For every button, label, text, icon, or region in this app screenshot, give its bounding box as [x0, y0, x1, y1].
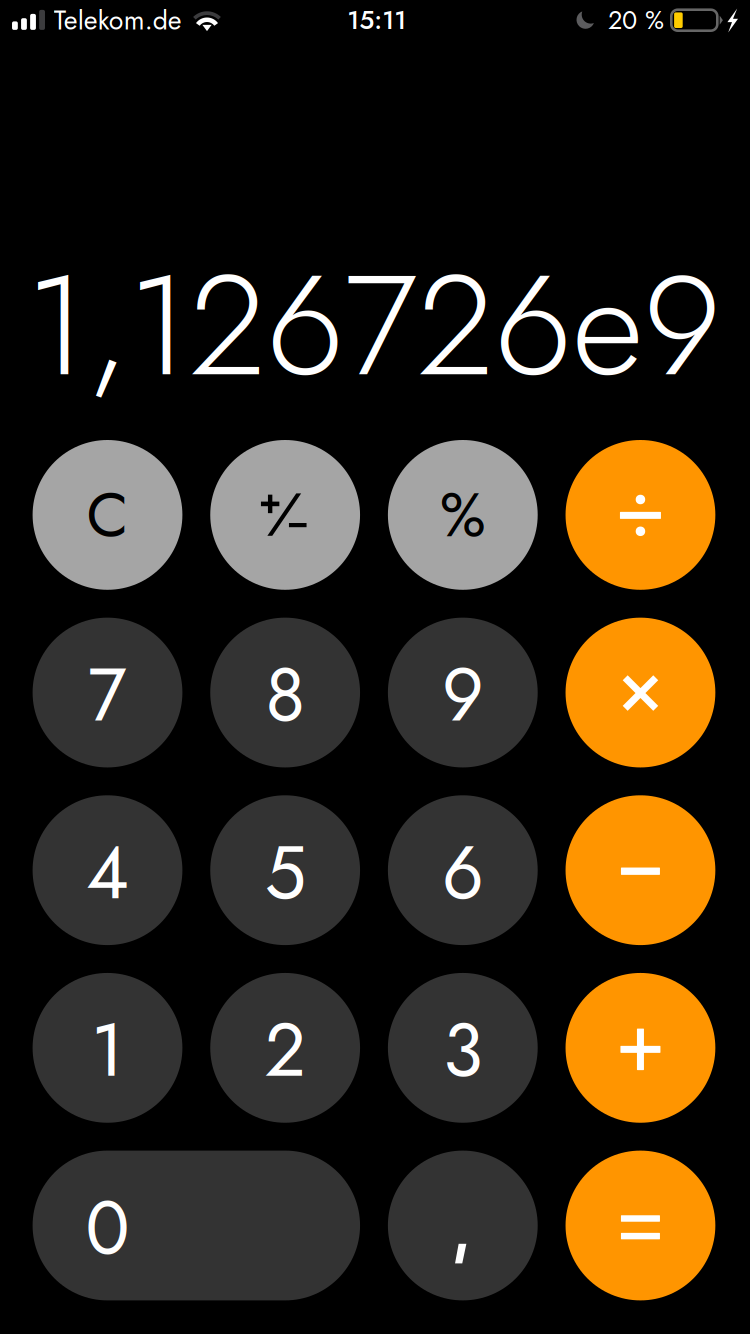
staticText: Telekom.de: [54, 1, 182, 39]
button[interactable]: 6: [388, 795, 538, 945]
button[interactable]: 7: [33, 618, 182, 767]
staticText: 5: [265, 820, 306, 926]
button[interactable]: Multiply: [566, 618, 715, 767]
staticText: 0: [85, 1175, 129, 1281]
staticText: 7: [88, 642, 127, 748]
button[interactable]: 9: [388, 618, 538, 767]
button[interactable]: %: [388, 440, 538, 590]
staticText: %: [440, 471, 486, 559]
button[interactable]: Subtract: [566, 795, 715, 945]
button[interactable]: 8: [210, 618, 360, 767]
button[interactable]: C: [33, 440, 182, 590]
button[interactable]: 5: [210, 795, 360, 945]
button[interactable]: 2: [210, 973, 360, 1123]
button[interactable]: Equals: [566, 1151, 715, 1300]
button[interactable]: 4: [33, 795, 182, 945]
button[interactable]: 0: [33, 1151, 360, 1300]
staticText: 15:11: [347, 2, 406, 39]
staticText: 3: [443, 997, 483, 1103]
staticText: 2: [264, 997, 306, 1103]
staticText: 6: [442, 820, 484, 926]
button[interactable]: Plus minus: [210, 440, 360, 590]
staticText: 8: [265, 642, 305, 748]
button[interactable]: 1: [33, 973, 182, 1123]
staticText: C: [86, 471, 128, 559]
staticText: 4: [86, 820, 129, 926]
staticText: 9: [442, 642, 484, 748]
staticText: 1: [91, 997, 124, 1103]
staticText: 1,126726e9: [26, 224, 721, 427]
button[interactable]: Divide: [566, 440, 715, 590]
staticText: 20 %: [608, 2, 664, 39]
button[interactable]: Decimal separator: [388, 1151, 538, 1300]
button[interactable]: 3: [388, 973, 538, 1123]
button[interactable]: Add: [566, 973, 715, 1123]
